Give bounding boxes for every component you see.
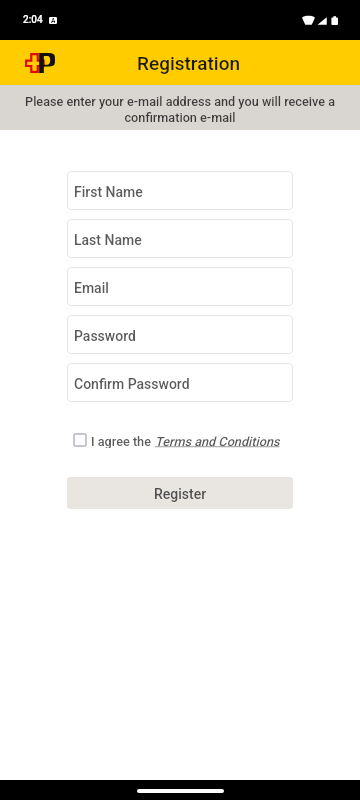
button[interactable]: I agree the xyxy=(67,433,293,447)
button[interactable]: Email xyxy=(67,267,293,306)
staticText: Confirm Password xyxy=(74,376,190,392)
button[interactable]: First Name xyxy=(67,171,293,210)
button[interactable]: Last Name xyxy=(67,219,293,258)
button[interactable]: Register xyxy=(67,477,293,509)
staticText: Password xyxy=(74,328,136,344)
staticText: A xyxy=(51,17,56,24)
staticText: Register xyxy=(154,486,207,502)
button[interactable]: Terms and Conditions xyxy=(155,434,280,448)
staticText: Email xyxy=(74,280,109,296)
staticText: First Name xyxy=(74,184,143,200)
button[interactable]: Password xyxy=(67,315,293,354)
staticText: Last Name xyxy=(74,232,142,248)
staticText: 2:04 xyxy=(23,14,43,26)
staticText: I agree the xyxy=(91,434,155,448)
staticText: Please enter your e-mail address and you… xyxy=(12,94,348,126)
button[interactable]: Confirm Password xyxy=(67,363,293,402)
staticText: Registration xyxy=(137,52,241,74)
